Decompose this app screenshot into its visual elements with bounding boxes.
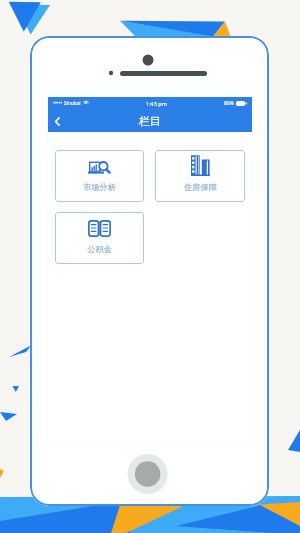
button[interactable]: 公积金 bbox=[55, 212, 144, 264]
staticText: ••••• Sinokai bbox=[53, 100, 81, 107]
staticText: 80% bbox=[224, 100, 234, 107]
button[interactable]: Back bbox=[47, 111, 67, 131]
staticText: 公积金 bbox=[87, 244, 112, 254]
staticText: 1:43 pm bbox=[146, 100, 167, 107]
staticText: 栏目 bbox=[139, 114, 161, 128]
button[interactable]: 市场分析 bbox=[55, 150, 144, 202]
staticText: 住房保障 bbox=[184, 182, 217, 192]
button[interactable]: 住房保障 bbox=[155, 150, 245, 202]
staticText: 市场分析 bbox=[83, 182, 116, 192]
